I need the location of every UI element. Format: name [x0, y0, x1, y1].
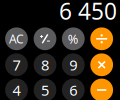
button[interactable]: Minus: [90, 79, 113, 100]
staticText: 6 450: [59, 0, 117, 26]
button[interactable]: Divide: [90, 27, 113, 50]
button[interactable]: 5: [34, 79, 56, 100]
button[interactable]: Multiply: [90, 53, 113, 76]
button[interactable]: 9: [62, 53, 85, 76]
staticText: 9: [69, 55, 77, 75]
staticText: 5: [41, 80, 49, 100]
staticText: AC: [9, 31, 24, 47]
button[interactable]: 8: [34, 53, 56, 76]
button[interactable]: 4: [5, 79, 28, 100]
staticText: %: [68, 30, 79, 47]
button[interactable]: 6: [62, 79, 85, 100]
button[interactable]: Percent: [62, 27, 85, 50]
staticText: 4: [12, 80, 20, 100]
button[interactable]: AC: [5, 27, 28, 50]
button[interactable]: Plus minus: [34, 27, 56, 50]
button[interactable]: 7: [5, 53, 28, 76]
staticText: 8: [41, 55, 49, 75]
staticText: 7: [12, 55, 20, 75]
staticText: 6: [69, 80, 77, 100]
